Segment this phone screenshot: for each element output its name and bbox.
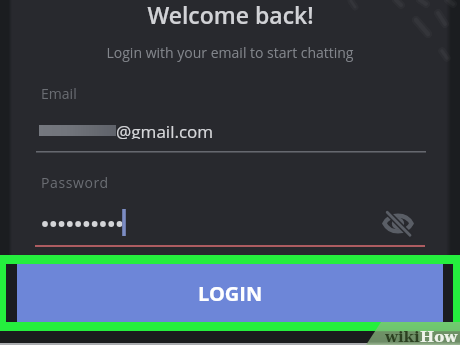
staticText: wiki <box>385 328 420 342</box>
button[interactable]: LOGIN <box>17 264 443 322</box>
button[interactable]: Show password <box>380 205 416 242</box>
staticText: How <box>420 328 458 342</box>
staticText: Welcome back! <box>147 0 314 29</box>
staticText: Login with your email to start chatting <box>106 43 354 62</box>
staticText: Password <box>41 173 109 192</box>
staticText: LOGIN <box>198 280 263 307</box>
staticText: @gmail.com <box>116 120 214 139</box>
staticText: Email <box>41 84 77 103</box>
